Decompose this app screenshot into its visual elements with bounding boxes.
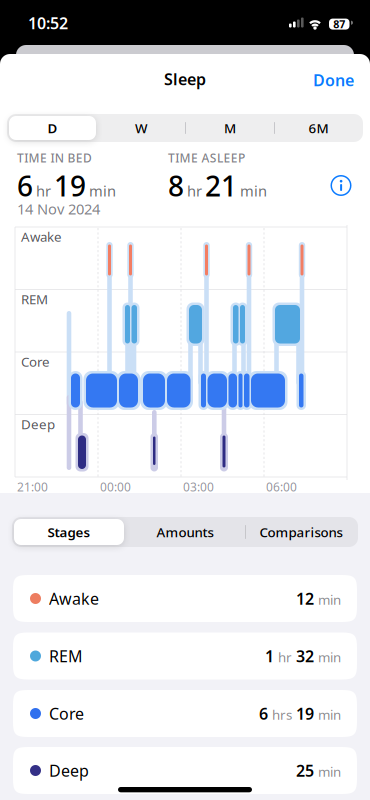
staticText: 14 Nov 2024 xyxy=(17,199,100,218)
button[interactable]: W xyxy=(97,116,185,140)
staticText: Sleep xyxy=(164,68,206,90)
button[interactable]: M xyxy=(186,116,274,140)
staticText: 21:00 xyxy=(17,479,48,495)
button[interactable]: D xyxy=(9,116,96,140)
staticText: Core xyxy=(49,703,84,724)
staticText: REM xyxy=(21,290,48,308)
staticText: 06:00 xyxy=(266,479,297,495)
staticText: hrs xyxy=(272,706,292,723)
staticText: Stages xyxy=(47,523,90,541)
button[interactable]: Stages xyxy=(14,519,124,545)
staticText: min xyxy=(318,648,341,666)
staticText: 03:00 xyxy=(183,479,214,495)
button[interactable]: Deep xyxy=(13,747,357,794)
staticText: Done xyxy=(313,69,354,91)
staticText: TIME ASLEEP xyxy=(168,150,245,166)
staticText: 21 xyxy=(205,167,237,204)
staticText: W xyxy=(135,119,148,137)
staticText: 6 xyxy=(17,167,33,204)
button[interactable]: About Sleep xyxy=(330,175,351,196)
staticText: min xyxy=(318,763,341,780)
staticText: 1 xyxy=(265,645,274,667)
staticText: TIME IN BED xyxy=(17,150,92,166)
staticText: 00:00 xyxy=(100,479,131,495)
staticText: 6M xyxy=(308,119,328,137)
staticText: Deep xyxy=(21,415,55,433)
staticText: 10:52 xyxy=(28,12,68,34)
button[interactable]: Core xyxy=(13,690,357,737)
staticText: hr xyxy=(36,181,51,200)
staticText: min xyxy=(240,181,267,200)
button[interactable]: 6M xyxy=(274,116,362,140)
staticText: Awake xyxy=(21,228,62,245)
staticText: D xyxy=(47,119,57,137)
button[interactable]: Done xyxy=(0,69,354,91)
staticText: hr xyxy=(187,181,202,200)
staticText: 87 xyxy=(333,17,345,31)
staticText: 19 xyxy=(54,167,86,204)
staticText: Awake xyxy=(49,588,99,609)
staticText: min xyxy=(318,591,341,608)
staticText: 8 xyxy=(168,167,184,204)
staticText: Deep xyxy=(49,760,89,781)
staticText: M xyxy=(224,119,236,137)
staticText: 32 xyxy=(296,645,314,667)
staticText: hr xyxy=(278,648,292,666)
staticText: REM xyxy=(49,645,83,667)
staticText: min xyxy=(318,706,341,723)
staticText: 12 xyxy=(296,588,314,609)
staticText: Core xyxy=(21,353,50,370)
button[interactable]: Amounts xyxy=(128,519,242,545)
button[interactable]: REM xyxy=(13,632,357,679)
staticText: 6 xyxy=(259,703,268,724)
staticText: min xyxy=(89,181,116,200)
staticText: Comparisons xyxy=(259,523,342,541)
staticText: 25 xyxy=(296,760,314,781)
button[interactable]: Awake xyxy=(13,575,357,622)
staticText: Amounts xyxy=(156,523,213,541)
button[interactable]: Comparisons xyxy=(244,519,358,545)
staticText: 19 xyxy=(296,703,314,724)
